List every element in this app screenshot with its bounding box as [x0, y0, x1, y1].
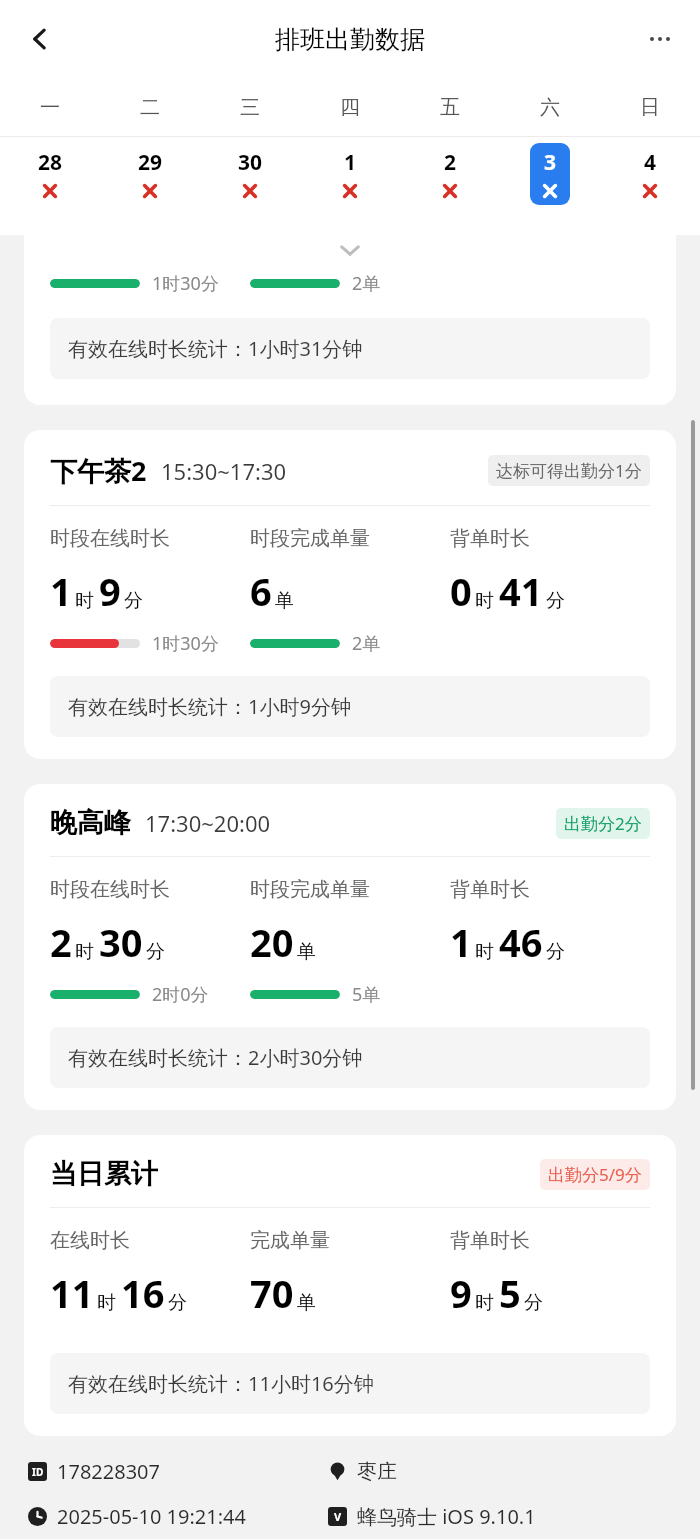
- staticText: 2单: [352, 631, 381, 656]
- button[interactable]: 30: [230, 143, 270, 205]
- staticText: 一: [40, 95, 60, 120]
- staticText: 有效在线时长统计：1小时9分钟: [68, 693, 351, 720]
- button[interactable]: 当日累计: [24, 1135, 676, 1436]
- staticText: 46: [499, 916, 543, 968]
- staticText: 单: [297, 940, 316, 964]
- staticText: 2时0分: [152, 982, 209, 1007]
- staticText: 1: [50, 565, 72, 617]
- staticText: 1: [450, 916, 472, 968]
- button[interactable]: 2: [430, 143, 470, 205]
- staticText: 时: [75, 940, 94, 964]
- button[interactable]: Back: [14, 13, 66, 65]
- staticText: 背单时长: [450, 1228, 530, 1253]
- staticText: 枣庄: [357, 1459, 397, 1484]
- button[interactable]: 晚高峰: [24, 784, 676, 1110]
- staticText: 完成单量: [250, 1228, 330, 1253]
- staticText: 背单时长: [450, 526, 530, 551]
- staticText: 分: [546, 589, 565, 613]
- staticText: 2025-05-10 19:21:44: [57, 1503, 246, 1530]
- staticText: 2: [50, 916, 72, 968]
- staticText: 分: [168, 1291, 187, 1315]
- staticText: 9: [99, 565, 121, 617]
- staticText: 时段在线时长: [50, 526, 170, 551]
- staticText: 时: [475, 1291, 494, 1315]
- button[interactable]: 1时30分: [24, 235, 676, 405]
- staticText: 5单: [352, 982, 381, 1007]
- staticText: 时: [475, 940, 494, 964]
- staticText: 时: [475, 589, 494, 613]
- staticText: 日: [640, 95, 660, 120]
- button[interactable]: 3: [530, 143, 570, 205]
- staticText: 17:30~20:00: [145, 808, 271, 838]
- staticText: 28: [38, 148, 63, 177]
- staticText: 五: [440, 95, 460, 120]
- staticText: 单: [275, 589, 294, 613]
- staticText: 30: [99, 916, 143, 968]
- staticText: 分: [546, 940, 565, 964]
- staticText: 16: [121, 1267, 165, 1319]
- staticText: 3: [544, 148, 557, 177]
- staticText: ID: [32, 1465, 44, 1479]
- staticText: 1时30分: [152, 631, 219, 656]
- staticText: V: [334, 1509, 342, 1524]
- staticText: 1: [344, 148, 357, 177]
- staticText: 下午茶2: [50, 452, 147, 489]
- staticText: 分: [524, 1291, 543, 1315]
- staticText: 时: [75, 589, 94, 613]
- staticText: 出勤分5/9分: [548, 1163, 642, 1186]
- staticText: 时段完成单量: [250, 877, 370, 902]
- staticText: 在线时长: [50, 1228, 130, 1253]
- staticText: 时: [97, 1291, 116, 1315]
- staticText: 15:30~17:30: [161, 456, 287, 486]
- staticText: 四: [340, 95, 360, 120]
- staticText: 晚高峰: [50, 806, 131, 840]
- staticText: 分: [146, 940, 165, 964]
- staticText: 11: [50, 1267, 94, 1319]
- staticText: 6: [250, 565, 272, 617]
- staticText: 20: [250, 916, 294, 968]
- button[interactable]: Expand: [337, 237, 363, 263]
- button[interactable]: 下午茶2: [24, 430, 676, 759]
- staticText: 0: [450, 565, 472, 617]
- staticText: 有效在线时长统计：1小时31分钟: [68, 335, 363, 362]
- staticText: 有效在线时长统计：11小时16分钟: [68, 1370, 374, 1397]
- staticText: 41: [499, 565, 543, 617]
- staticText: 蜂鸟骑士 iOS 9.10.1: [357, 1503, 536, 1530]
- staticText: 当日累计: [50, 1157, 158, 1191]
- staticText: 六: [540, 95, 560, 120]
- staticText: 9: [450, 1267, 472, 1319]
- staticText: 有效在线时长统计：2小时30分钟: [68, 1044, 363, 1071]
- staticText: 排班出勤数据: [275, 24, 425, 55]
- staticText: 时段完成单量: [250, 526, 370, 551]
- button[interactable]: More options: [634, 13, 686, 65]
- staticText: 30: [238, 148, 263, 177]
- staticText: 5: [499, 1267, 521, 1319]
- staticText: 29: [138, 148, 163, 177]
- button[interactable]: 28: [30, 143, 70, 205]
- staticText: 二: [140, 95, 160, 120]
- staticText: 时段在线时长: [50, 877, 170, 902]
- button[interactable]: 29: [130, 143, 170, 205]
- staticText: 单: [297, 1291, 316, 1315]
- staticText: 1时30分: [152, 271, 219, 296]
- button[interactable]: 4: [630, 143, 670, 205]
- staticText: 178228307: [57, 1458, 160, 1485]
- staticText: 70: [250, 1267, 294, 1319]
- staticText: 分: [124, 589, 143, 613]
- staticText: 4: [644, 148, 657, 177]
- button[interactable]: 1: [330, 143, 370, 205]
- staticText: 达标可得出勤分1分: [496, 459, 642, 482]
- staticText: 背单时长: [450, 877, 530, 902]
- staticText: 三: [240, 95, 260, 120]
- staticText: 2单: [352, 271, 381, 296]
- staticText: 2: [444, 148, 457, 177]
- staticText: 出勤分2分: [564, 812, 642, 835]
